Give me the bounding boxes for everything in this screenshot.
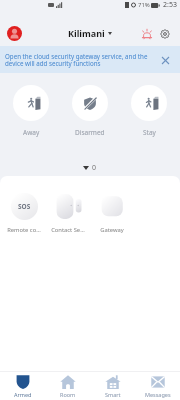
button[interactable]: Away xyxy=(13,85,49,137)
staticText: Room xyxy=(60,391,76,398)
staticText: SOS xyxy=(18,202,31,211)
button[interactable]: Alarm xyxy=(139,26,155,42)
staticText: 0 xyxy=(92,163,97,173)
staticText: Gateway xyxy=(100,226,124,234)
button[interactable]: Settings xyxy=(157,26,173,42)
button[interactable]: Kilimani xyxy=(66,25,114,41)
button[interactable]: Close xyxy=(158,53,172,67)
staticText: Stay xyxy=(143,128,156,137)
staticText: Messages xyxy=(145,391,171,398)
button[interactable]: Room xyxy=(45,372,90,400)
button[interactable]: Profile xyxy=(7,26,22,41)
staticText: Open the cloud security gateway service,… xyxy=(5,52,152,68)
button[interactable]: Messages xyxy=(135,372,180,400)
staticText: Disarmed xyxy=(75,128,105,137)
button[interactable]: Armed xyxy=(0,372,45,400)
staticText: Remote co... xyxy=(7,226,41,234)
button[interactable]: 0 xyxy=(0,163,180,173)
button[interactable]: Contact Se... xyxy=(46,193,90,234)
button[interactable]: Gateway xyxy=(90,193,134,234)
button[interactable]: SOS xyxy=(2,193,46,234)
button[interactable]: Stay xyxy=(131,85,167,137)
button[interactable]: Smart xyxy=(90,372,135,400)
staticText: Armed xyxy=(14,391,32,398)
staticText: Contact Se... xyxy=(51,226,85,234)
staticText: Kilimani xyxy=(68,27,105,39)
staticText: Smart xyxy=(105,391,121,398)
button[interactable]: Disarmed xyxy=(72,85,108,137)
staticText: 71% xyxy=(138,1,150,9)
staticText: Away xyxy=(23,128,40,137)
staticText: 2:53 xyxy=(163,0,177,10)
